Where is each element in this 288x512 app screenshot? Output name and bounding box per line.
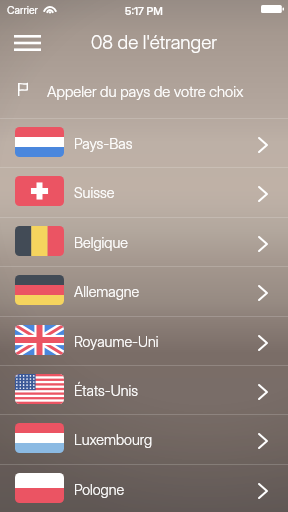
button[interactable]: Belgique	[0, 217, 288, 266]
staticText: Suisse	[74, 184, 115, 202]
staticText: États-Unis	[74, 382, 138, 400]
staticText: Allemagne	[74, 283, 140, 301]
staticText: Carrier	[7, 4, 38, 17]
button[interactable]: Pays-Bas	[0, 118, 288, 167]
button[interactable]: Appeler du pays de votre choix	[0, 66, 288, 118]
staticText: Luxembourg	[74, 431, 153, 449]
staticText: Appeler du pays de votre choix	[47, 82, 244, 100]
staticText: Royaume-Uni	[74, 333, 159, 351]
button[interactable]: Allemagne	[0, 266, 288, 315]
button[interactable]: Menu	[4, 22, 43, 62]
staticText: Belgique	[74, 234, 128, 252]
button[interactable]: Suisse	[0, 167, 288, 216]
staticText: Pologne	[74, 481, 125, 499]
staticText: 5:17 PM	[125, 4, 163, 17]
button[interactable]: Royaume-Uni	[0, 316, 288, 365]
button[interactable]: États-Unis	[0, 365, 288, 414]
button[interactable]: Luxembourg	[0, 414, 288, 463]
staticText: Pays-Bas	[74, 135, 133, 153]
staticText: 08 de l'étranger	[91, 31, 217, 54]
button[interactable]: Pologne	[0, 464, 288, 512]
